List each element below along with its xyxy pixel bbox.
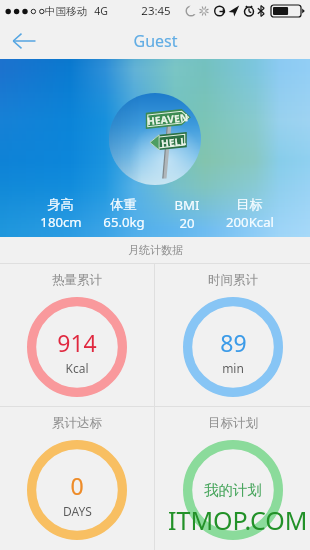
button[interactable]: Back [0,22,48,59]
staticText: HELL [160,134,188,150]
button[interactable]: 累计达标 [0,407,154,550]
staticText: min [222,360,244,376]
staticText: BMI [174,196,200,214]
staticText: 中国移动 [45,5,87,18]
button[interactable]: 热量累计 [0,264,154,406]
staticText: 累计达标 [52,415,102,431]
staticText: 4G [94,4,108,18]
staticText: 身高 [47,196,74,213]
staticText: 65.0kg [103,213,145,231]
staticText: 20 [179,214,195,232]
staticText: 目标 [236,196,263,213]
staticText: HEAVEN [146,110,189,128]
staticText: 我的计划 [204,481,262,499]
staticText: 914 [57,327,97,358]
staticText: 200Kcal [226,213,274,231]
staticText: 目标计划 [208,415,258,431]
button[interactable]: Profile photo [109,93,201,185]
staticText: 热量累计 [52,272,102,288]
staticText: Guest [133,30,178,52]
staticText: 89 [220,327,247,358]
staticText: Kcal [65,360,89,376]
staticText: ITMOP.COM [168,503,308,537]
staticText: 月统计数据 [128,243,183,257]
button[interactable]: 目标计划 [155,407,310,550]
staticText: 23:45 [141,3,171,19]
staticText: 0 [70,470,84,501]
button[interactable]: 时间累计 [155,264,310,406]
staticText: 体重 [110,196,137,213]
staticText: 180cm [40,213,82,231]
staticText: DAYS [63,503,92,519]
staticText: 时间累计 [208,272,258,288]
